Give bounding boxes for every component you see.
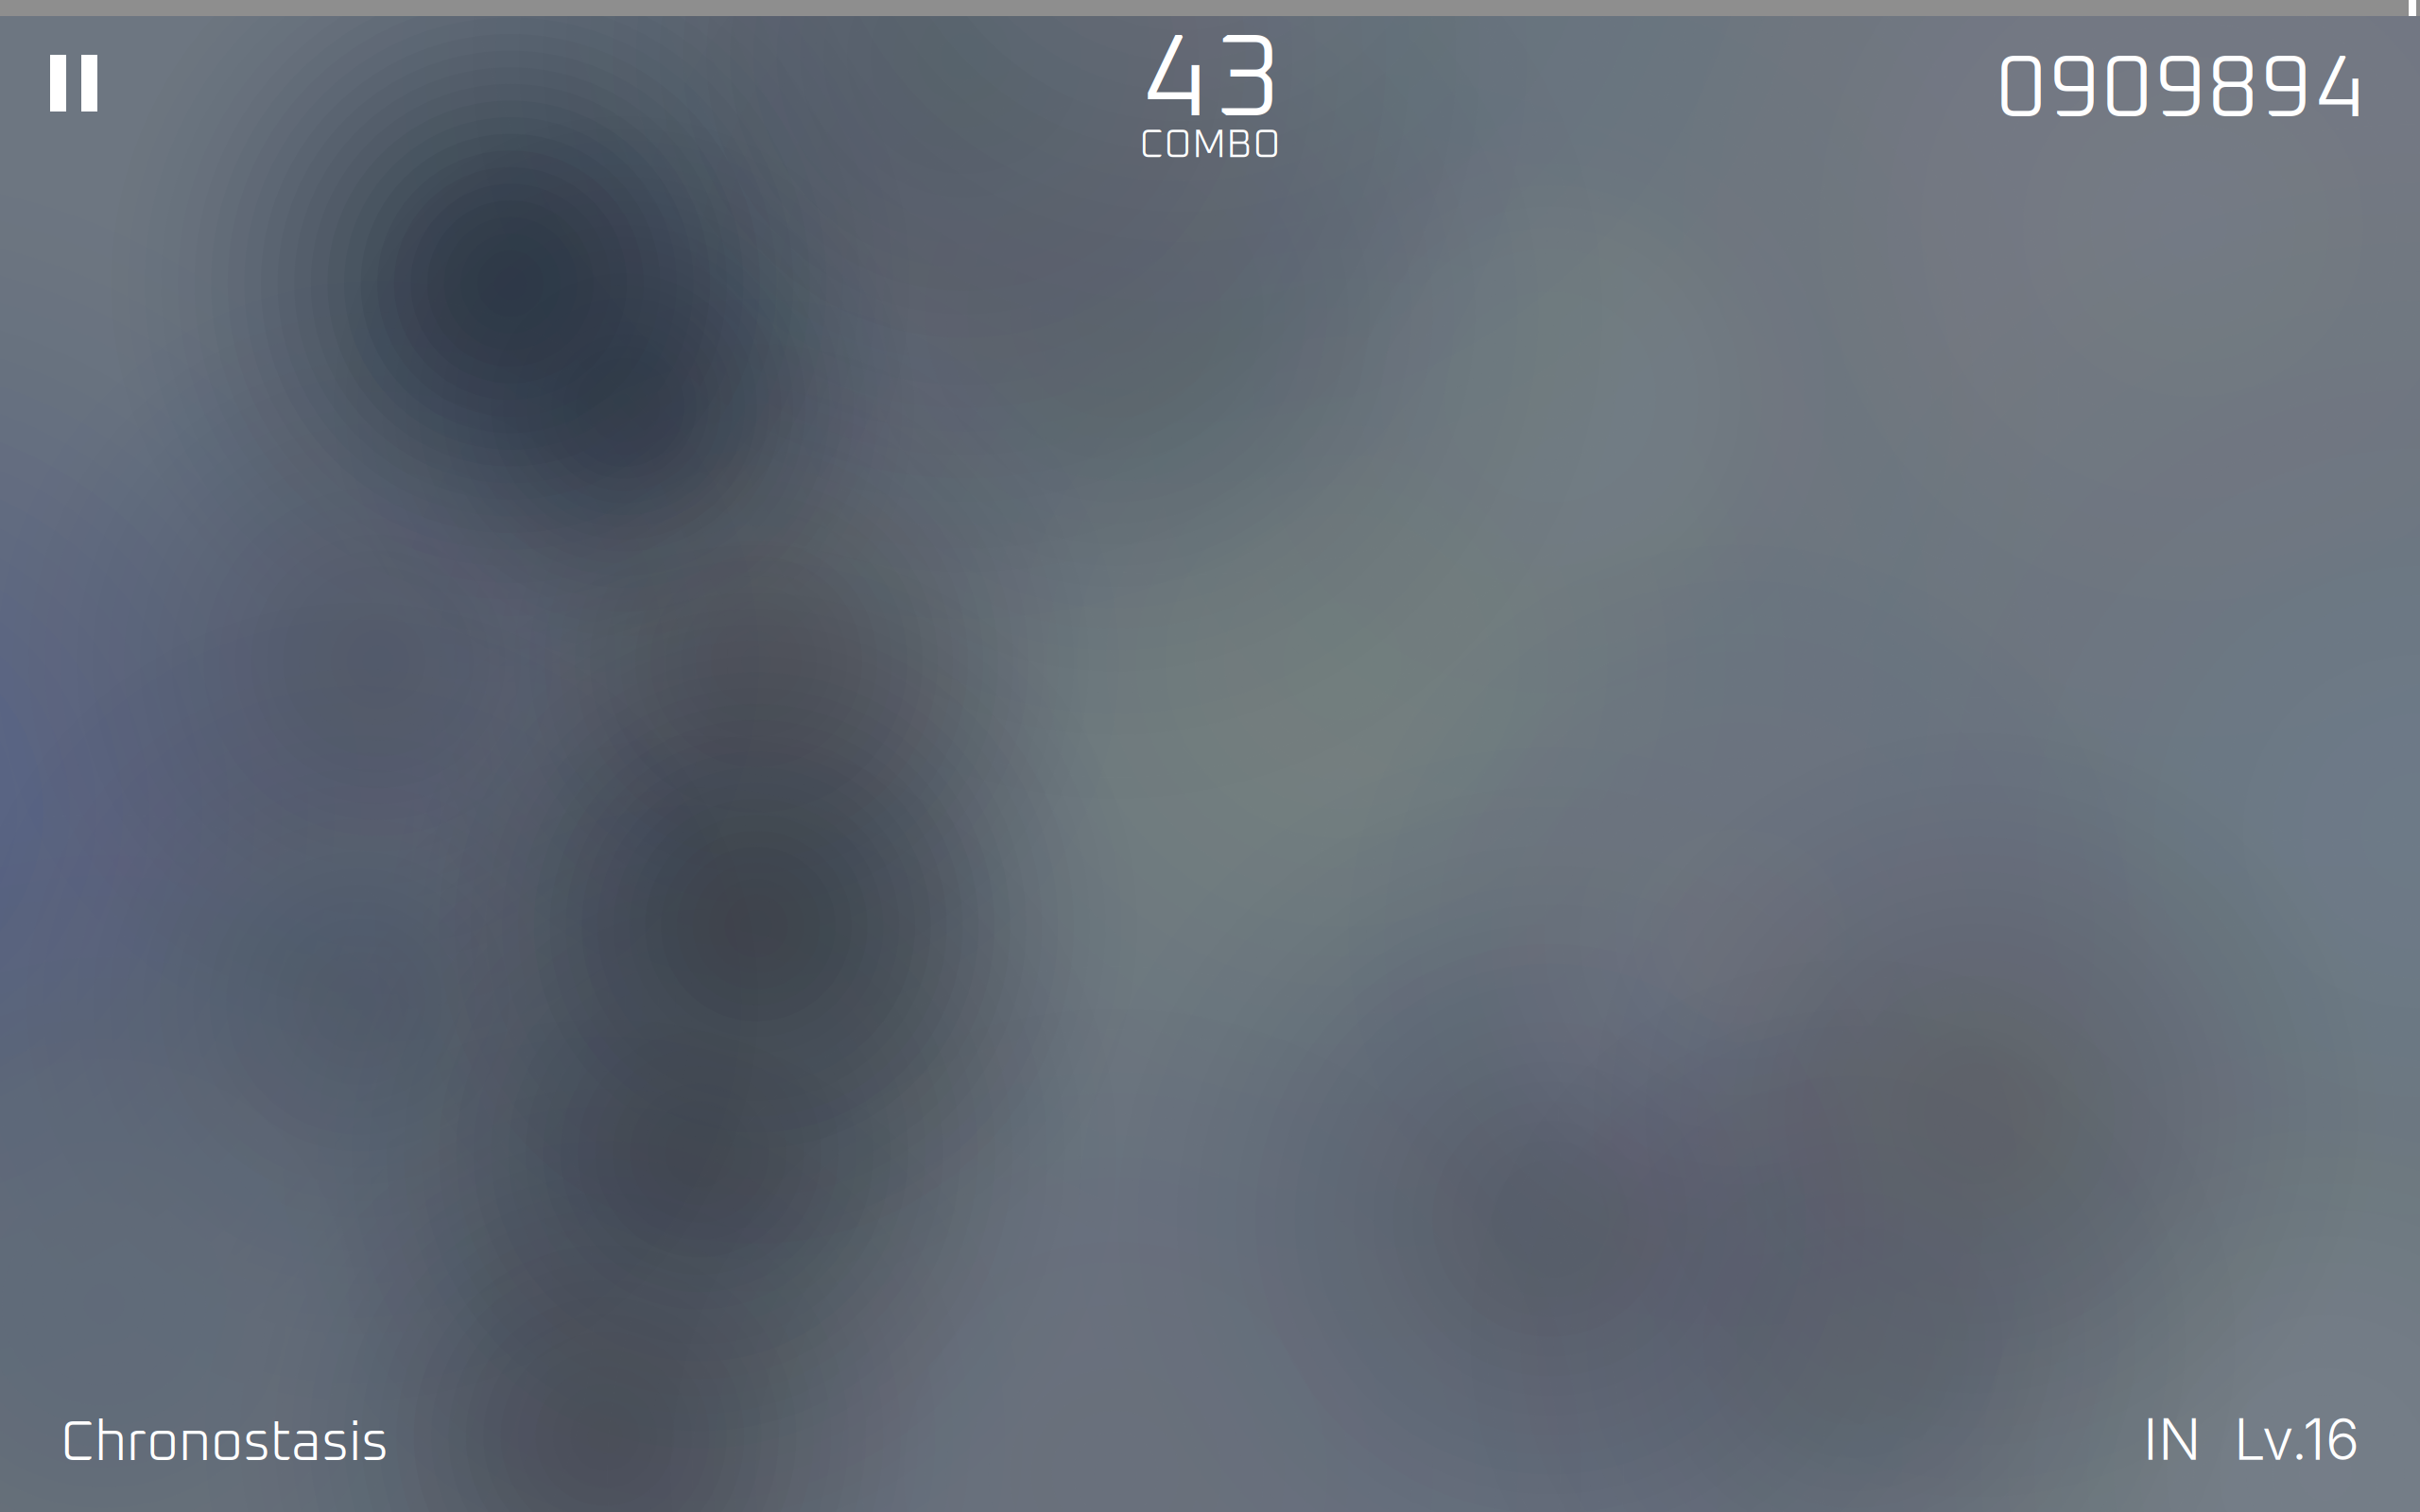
staticText: 0909894 [1996,47,2364,135]
staticText: Chronostasis [60,1416,389,1472]
staticText: 43 [1140,24,1280,140]
staticText: COMBO [1140,126,1280,165]
button[interactable]: Pause [0,14,147,152]
staticText: IN Lv.16 [2143,1405,2359,1474]
